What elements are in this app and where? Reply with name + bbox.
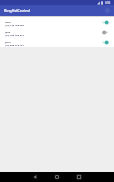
staticText: RingHalControl — [4, 8, 31, 13]
staticText: (+0) 555 010 101 — [5, 43, 24, 46]
button[interactable]: Home — [52, 172, 62, 182]
staticText: John — [5, 40, 11, 43]
staticText: Jane — [5, 30, 11, 33]
button[interactable]: linus — [0, 17, 114, 27]
staticText: (+0) 123 456 789 — [5, 23, 24, 26]
staticText: linus — [5, 20, 11, 23]
button[interactable]: Back — [30, 172, 40, 182]
staticText: (+0) 456 789 012 — [5, 33, 24, 36]
button[interactable]: Recents — [74, 172, 84, 182]
button[interactable]: Turn off — [100, 18, 109, 27]
button[interactable]: John — [0, 37, 114, 47]
button[interactable]: Jane — [0, 27, 114, 37]
button[interactable]: Settings — [104, 7, 111, 14]
staticText: 3:06 — [105, 1, 111, 5]
button[interactable]: Turn off — [100, 38, 109, 47]
button[interactable]: Turn on — [100, 28, 109, 37]
